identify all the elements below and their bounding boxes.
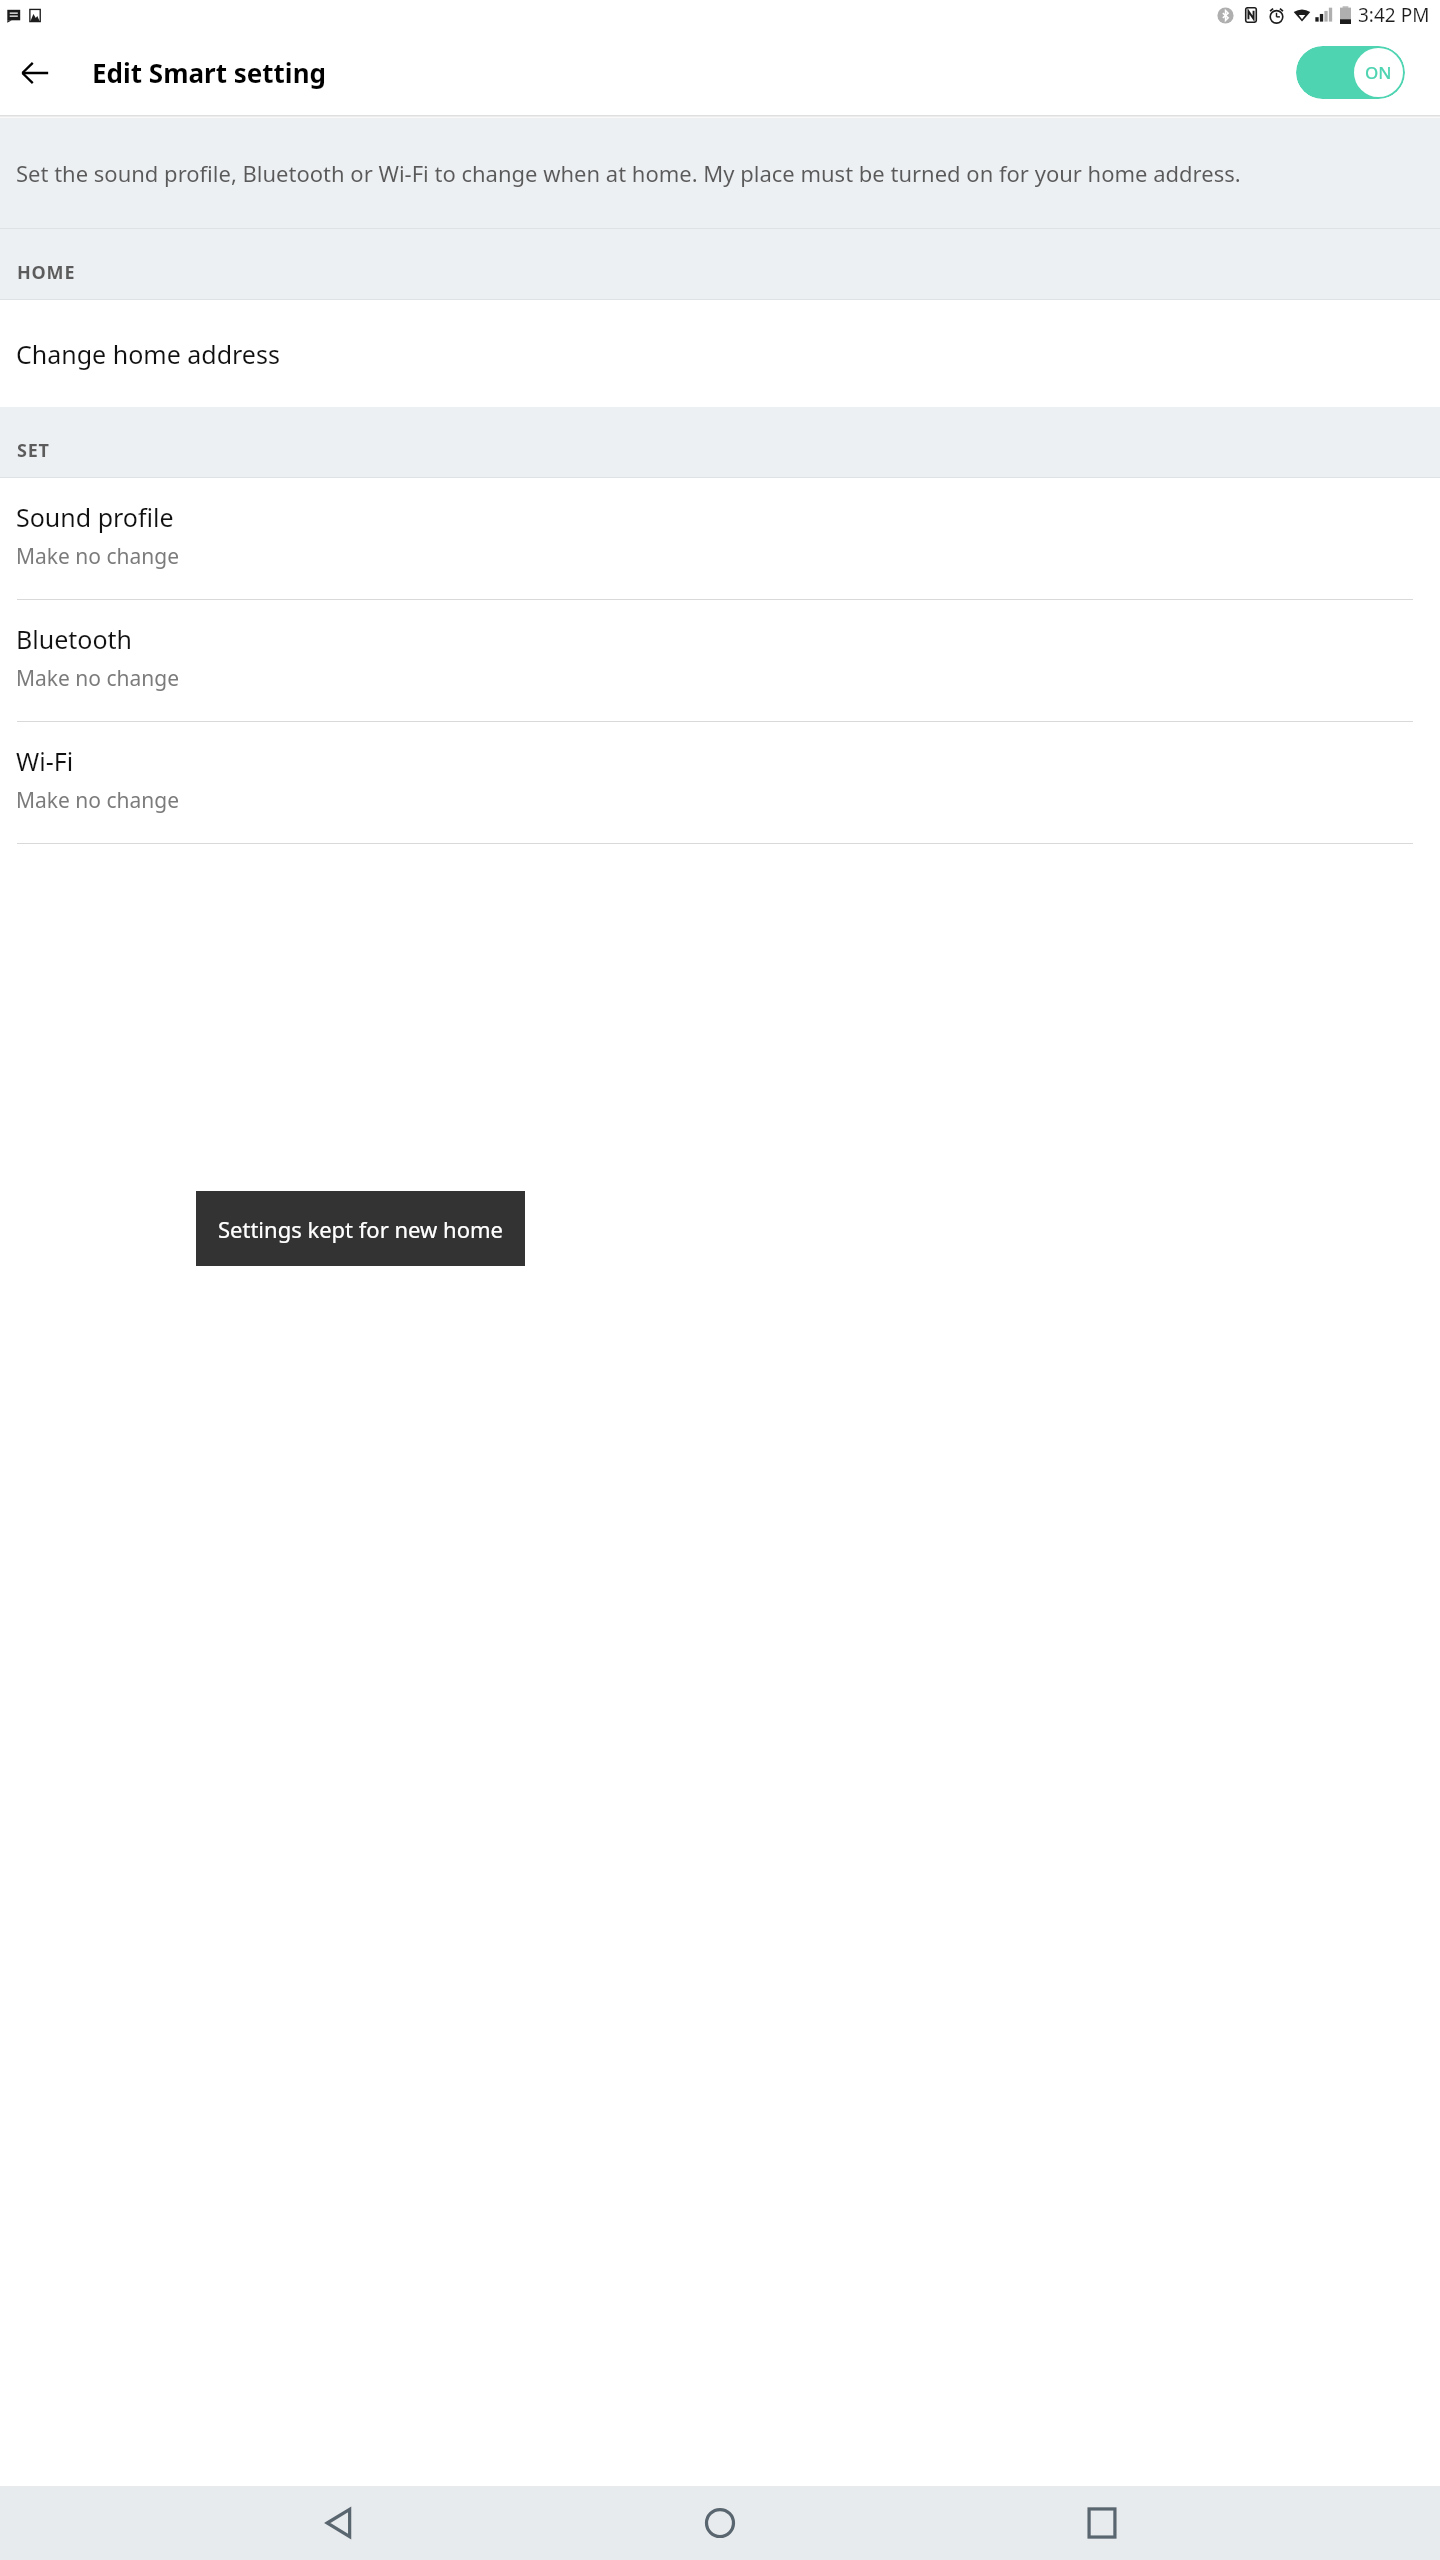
staticText: SET (17, 438, 50, 463)
staticText: Sound profile (16, 500, 174, 534)
button[interactable]: Sound profile (0, 478, 1440, 600)
staticText: Make no change (16, 542, 180, 571)
button[interactable]: Recent apps (1059, 2486, 1145, 2560)
staticText: Wi-Fi (16, 744, 74, 778)
staticText: ON (1365, 61, 1392, 84)
staticText: Change home address (16, 337, 280, 371)
button[interactable]: Change home address (0, 300, 1440, 407)
staticText: 3:42 PM (1358, 2, 1430, 28)
button[interactable]: Wi-Fi (0, 722, 1440, 844)
staticText: Bluetooth (16, 622, 133, 656)
staticText: Edit Smart setting (92, 55, 326, 90)
button[interactable]: Home (677, 2486, 763, 2560)
button[interactable]: Smart setting toggle, on (1296, 46, 1405, 99)
staticText: Settings kept for new home (218, 1214, 503, 1244)
staticText: Make no change (16, 664, 180, 693)
button[interactable]: Back (296, 2486, 382, 2560)
staticText: HOME (17, 260, 76, 285)
staticText: Make no change (16, 786, 180, 815)
button[interactable]: Bluetooth (0, 600, 1440, 722)
staticText: Set the sound profile, Bluetooth or Wi-F… (16, 158, 1241, 188)
button[interactable]: Back (9, 47, 61, 99)
